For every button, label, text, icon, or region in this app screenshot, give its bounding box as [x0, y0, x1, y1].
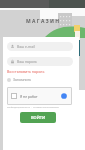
button[interactable]: Ваш e-mail — [7, 42, 73, 51]
staticText: Я не робот — [20, 94, 38, 99]
button[interactable]: Запомнить — [7, 77, 32, 82]
staticText: Ваш e-mail — [17, 44, 35, 49]
staticText: Ваш пароль — [17, 59, 37, 64]
staticText: Конфиденциальность - Условия использован… — [7, 106, 59, 109]
staticText: М А Г А З И Н — [0, 18, 85, 25]
button[interactable]: Ваш пароль — [7, 57, 73, 66]
staticText: ВОЙТИ — [31, 115, 46, 120]
button[interactable]: Восстановить пароль — [7, 69, 45, 74]
staticText: Запомнить — [13, 77, 32, 82]
button[interactable]: Я не робот — [7, 87, 72, 105]
button[interactable]: ВОЙТИ — [20, 112, 56, 123]
